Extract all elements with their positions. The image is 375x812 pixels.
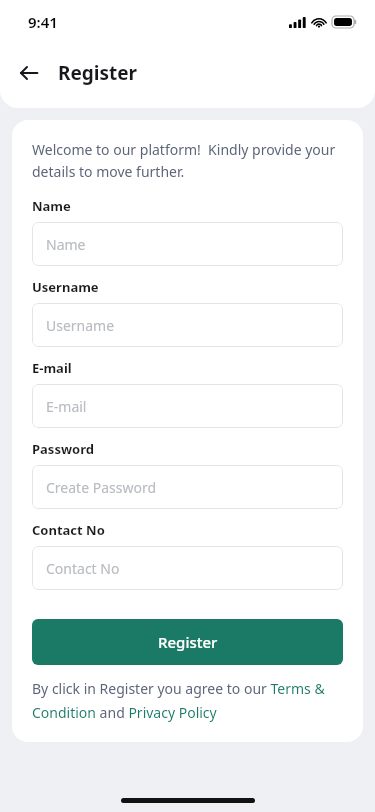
button[interactable]: Create Password [32, 465, 343, 509]
button[interactable]: Register [32, 619, 343, 665]
staticText: Register [158, 632, 218, 652]
staticText: Username [46, 316, 115, 335]
staticText: 9:41 [28, 12, 58, 32]
button[interactable]: Name [32, 222, 343, 266]
staticText: Username [32, 278, 99, 296]
staticText: Create Password [46, 478, 157, 497]
button[interactable]: Username [32, 303, 343, 347]
button[interactable]: By click in Register you agree to our Te… [32, 679, 343, 722]
staticText: Contact No [46, 559, 120, 578]
staticText: Welcome to our platform! Kindly provide … [32, 140, 343, 181]
staticText: Password [32, 440, 94, 458]
button[interactable]: Back [12, 56, 46, 90]
staticText: By click in Register you agree to our Te… [32, 679, 343, 722]
staticText: E-mail [46, 397, 87, 416]
button[interactable]: E-mail [32, 384, 343, 428]
staticText: Name [46, 235, 86, 254]
button[interactable]: Contact No [32, 546, 343, 590]
staticText: Contact No [32, 521, 105, 539]
staticText: Register [58, 60, 138, 86]
staticText: E-mail [32, 359, 72, 377]
staticText: Name [32, 197, 71, 215]
